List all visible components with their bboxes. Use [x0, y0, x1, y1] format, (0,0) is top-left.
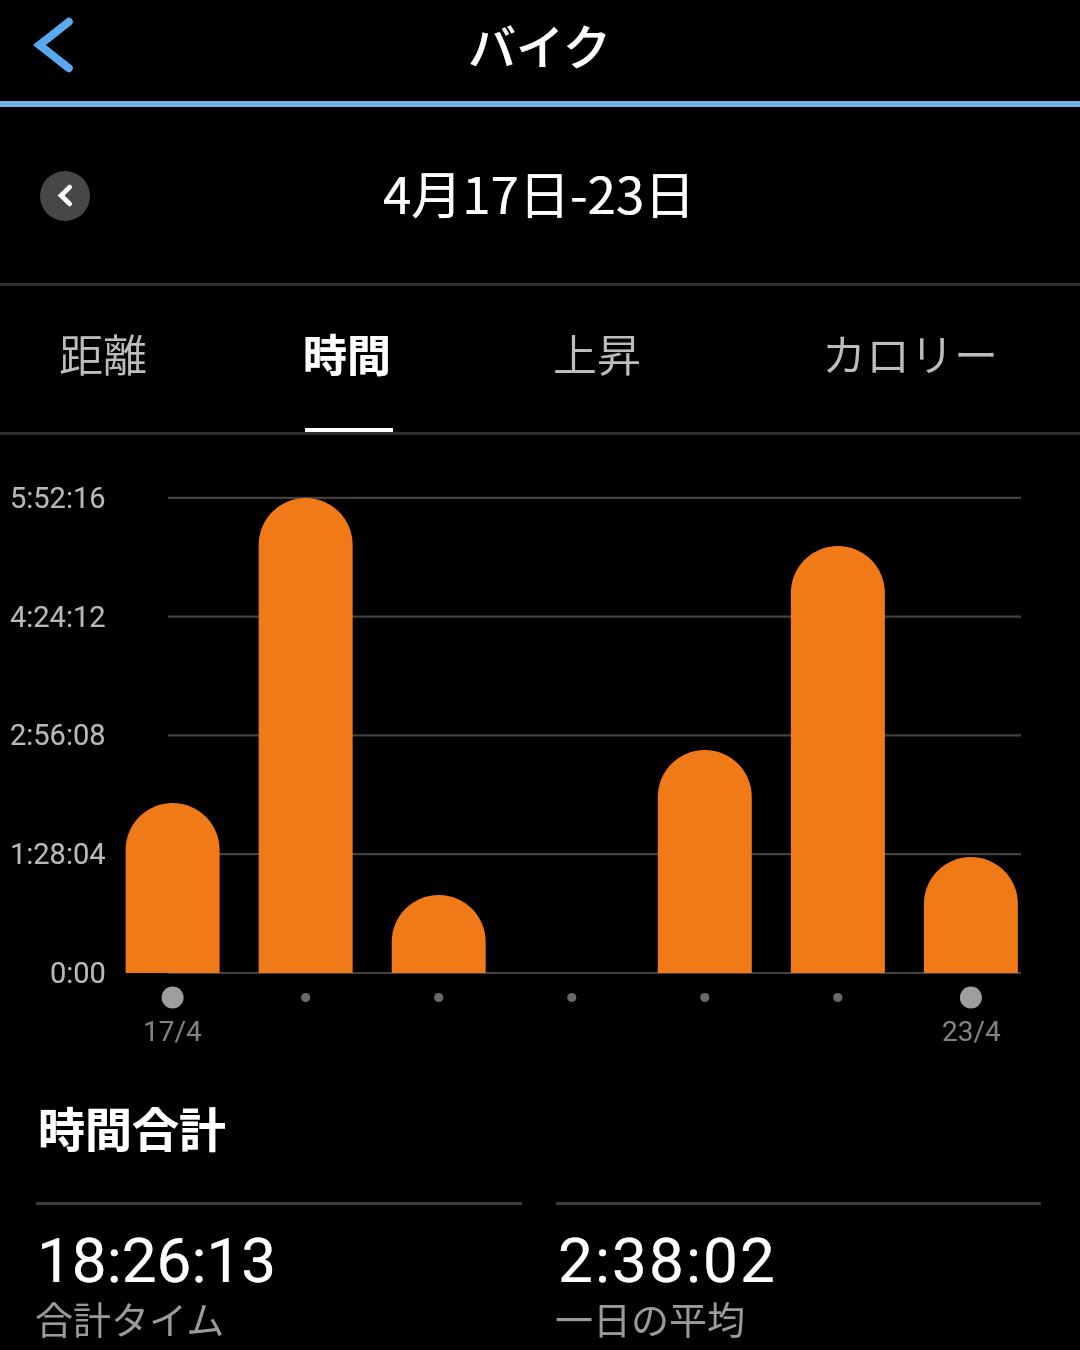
- staticText: 4:24:12: [10, 600, 106, 634]
- button[interactable]: 上昇: [480, 286, 720, 432]
- button[interactable]: Back: [0, 0, 110, 101]
- staticText: 上昇: [553, 321, 641, 385]
- staticText: 23/4: [942, 1015, 1001, 1048]
- button[interactable]: 距離: [0, 286, 210, 432]
- staticText: 1:28:04: [10, 837, 106, 871]
- button[interactable]: Previous week: [40, 171, 90, 221]
- staticText: 合計タイム: [35, 1290, 225, 1345]
- button[interactable]: カロリー: [720, 286, 1080, 432]
- staticText: 2:38:02: [558, 1224, 777, 1297]
- staticText: 18:26:13: [37, 1224, 277, 1297]
- staticText: 0:00: [50, 956, 106, 990]
- staticText: 距離: [59, 321, 147, 385]
- staticText: カロリー: [822, 321, 998, 385]
- staticText: 一日の平均: [555, 1290, 746, 1345]
- staticText: 時間合計: [38, 1092, 226, 1160]
- staticText: 時間: [303, 321, 391, 385]
- staticText: 4月17日-23日: [383, 155, 696, 229]
- staticText: 2:56:08: [10, 718, 106, 752]
- button[interactable]: 時間: [210, 286, 480, 432]
- staticText: 17/4: [143, 1015, 202, 1048]
- staticText: 5:52:16: [10, 481, 106, 515]
- staticText: バイク: [468, 9, 612, 79]
